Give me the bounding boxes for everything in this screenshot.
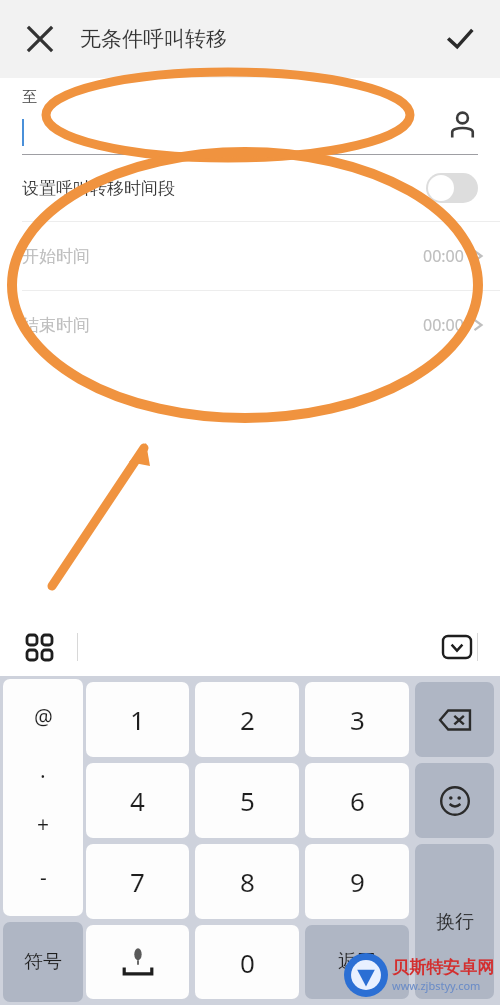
button[interactable]: 2 bbox=[195, 682, 299, 757]
button[interactable]: 1 bbox=[86, 682, 189, 757]
button[interactable]: Choose contact bbox=[440, 102, 484, 146]
staticText: 0 bbox=[240, 945, 255, 980]
button[interactable]: Toggle time period bbox=[426, 173, 478, 203]
button[interactable]: 8 bbox=[195, 844, 299, 919]
button[interactable]: Confirm bbox=[434, 13, 486, 65]
staticText: 1 bbox=[130, 702, 145, 737]
button[interactable]: 换行 bbox=[415, 844, 494, 999]
button[interactable]: 开始时间 bbox=[0, 222, 500, 290]
staticText: 符号 bbox=[24, 950, 62, 974]
staticText: - bbox=[40, 863, 47, 892]
staticText: 6 bbox=[350, 783, 365, 818]
button[interactable]: 9 bbox=[305, 844, 409, 919]
button[interactable]: 6 bbox=[305, 763, 409, 838]
staticText: 4 bbox=[130, 783, 145, 818]
button[interactable]: 符号 bbox=[3, 922, 83, 1002]
button[interactable]: 3 bbox=[305, 682, 409, 757]
staticText: 返回 bbox=[338, 950, 376, 974]
staticText: 贝斯特安卓网 bbox=[392, 957, 494, 978]
button[interactable]: 4 bbox=[86, 763, 189, 838]
staticText: www.zjbstyy.com bbox=[392, 978, 481, 993]
staticText: 3 bbox=[350, 702, 365, 737]
staticText: + bbox=[37, 810, 50, 839]
button[interactable]: 5 bbox=[195, 763, 299, 838]
staticText: 00:00 bbox=[423, 245, 464, 267]
staticText: 5 bbox=[240, 783, 255, 818]
staticText: @ bbox=[34, 703, 53, 732]
staticText: 9 bbox=[350, 864, 365, 899]
staticText: 7 bbox=[130, 864, 145, 899]
staticText: 2 bbox=[240, 702, 255, 737]
staticText: . bbox=[40, 756, 46, 785]
staticText: 设置呼叫转移时间段 bbox=[22, 178, 175, 199]
button[interactable]: Hide keyboard bbox=[438, 628, 476, 666]
staticText: 结束时间 bbox=[22, 315, 90, 336]
button[interactable]: 0 bbox=[195, 925, 299, 999]
staticText: 至 bbox=[22, 88, 37, 107]
button[interactable] bbox=[415, 682, 494, 757]
button[interactable]: 结束时间 bbox=[0, 291, 500, 359]
button[interactable] bbox=[86, 925, 189, 999]
staticText: 开始时间 bbox=[22, 246, 90, 267]
staticText: 无条件呼叫转移 bbox=[80, 26, 227, 52]
button[interactable]: Keyboard menu bbox=[22, 630, 56, 664]
button[interactable]: Close bbox=[14, 13, 66, 65]
button[interactable]: @ bbox=[3, 679, 83, 916]
staticText: 00:00 bbox=[423, 314, 464, 336]
button[interactable]: 7 bbox=[86, 844, 189, 919]
button[interactable]: 返回 bbox=[305, 925, 409, 999]
staticText: 换行 bbox=[436, 910, 474, 934]
button[interactable]: 设置呼叫转移时间段 bbox=[0, 155, 500, 221]
staticText: 8 bbox=[240, 864, 255, 899]
button[interactable] bbox=[415, 763, 494, 838]
